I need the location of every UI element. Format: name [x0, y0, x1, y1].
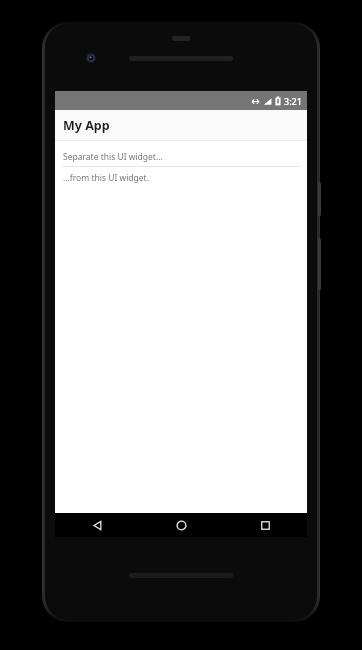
staticText: Separate this UI widget... [63, 151, 163, 163]
staticText: ...from this UI widget. [63, 172, 149, 184]
button[interactable]: Recent apps [223, 513, 307, 537]
button[interactable]: ...from this UI widget. [55, 167, 307, 189]
button[interactable]: Separate this UI widget... [55, 148, 307, 166]
button[interactable]: Back [55, 513, 139, 537]
button[interactable]: Home [139, 513, 223, 537]
staticText: 3:21 [284, 95, 302, 107]
staticText: My App [63, 117, 110, 134]
